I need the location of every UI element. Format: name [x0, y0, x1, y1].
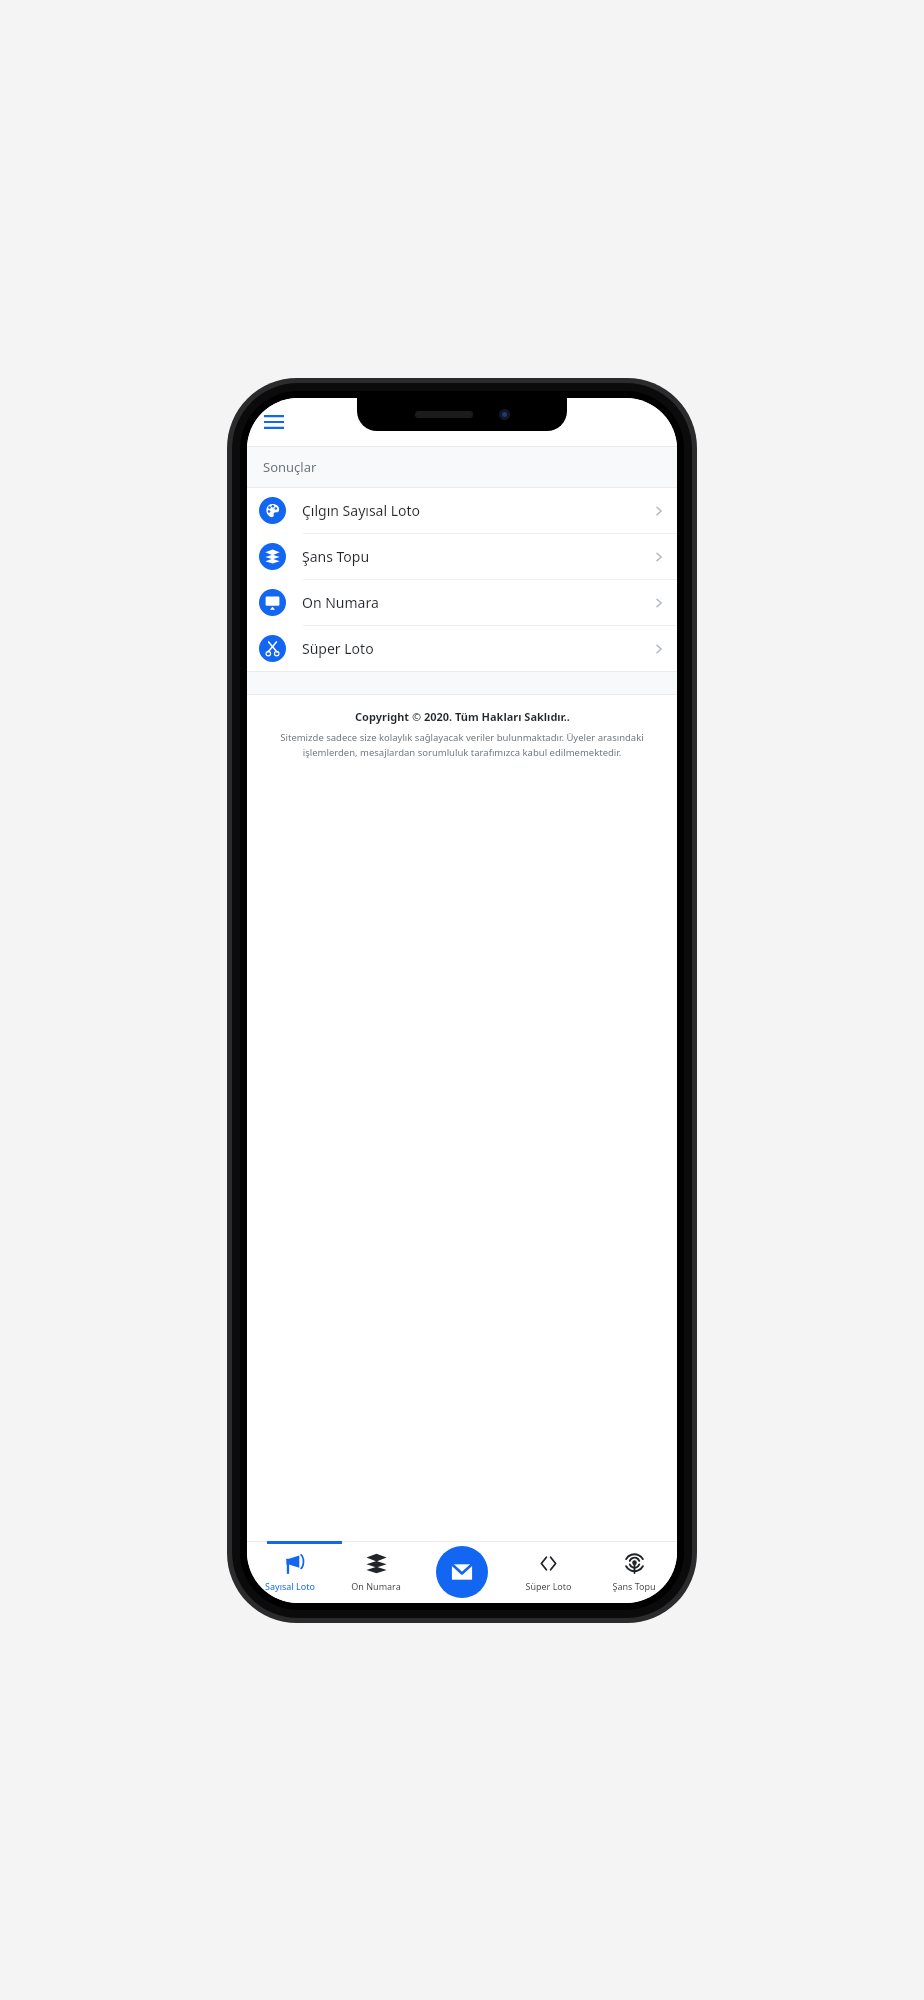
button[interactable]: Sayısal Loto: [247, 1541, 333, 1603]
staticText: Copyright © 2020. Tüm Hakları Saklıdır..: [355, 709, 570, 724]
button[interactable]: Şans Topu: [247, 534, 677, 579]
staticText: Sitemizde sadece size kolaylık sağlayaca…: [263, 731, 661, 759]
button[interactable]: Süper Loto: [247, 626, 677, 671]
staticText: Süper Loto: [302, 639, 374, 658]
button[interactable]: Mesajlar: [436, 1546, 488, 1598]
staticText: Çılgın Sayısal Loto: [302, 501, 421, 520]
staticText: Süper Loto: [525, 1580, 572, 1592]
button[interactable]: Şans Topu: [591, 1541, 677, 1603]
staticText: On Numara: [302, 593, 379, 612]
staticText: Şans Topu: [612, 1580, 656, 1592]
staticText: Sonuçlar: [263, 458, 317, 476]
button[interactable]: On Numara: [247, 580, 677, 625]
button[interactable]: On Numara: [333, 1541, 419, 1603]
button[interactable]: Süper Loto: [505, 1541, 591, 1603]
staticText: Şans Topu: [302, 547, 370, 566]
button[interactable]: Çılgın Sayısal Loto: [247, 488, 677, 533]
staticText: Sayısal Loto: [265, 1580, 315, 1592]
staticText: On Numara: [351, 1580, 401, 1592]
button[interactable]: Menu: [257, 405, 291, 439]
